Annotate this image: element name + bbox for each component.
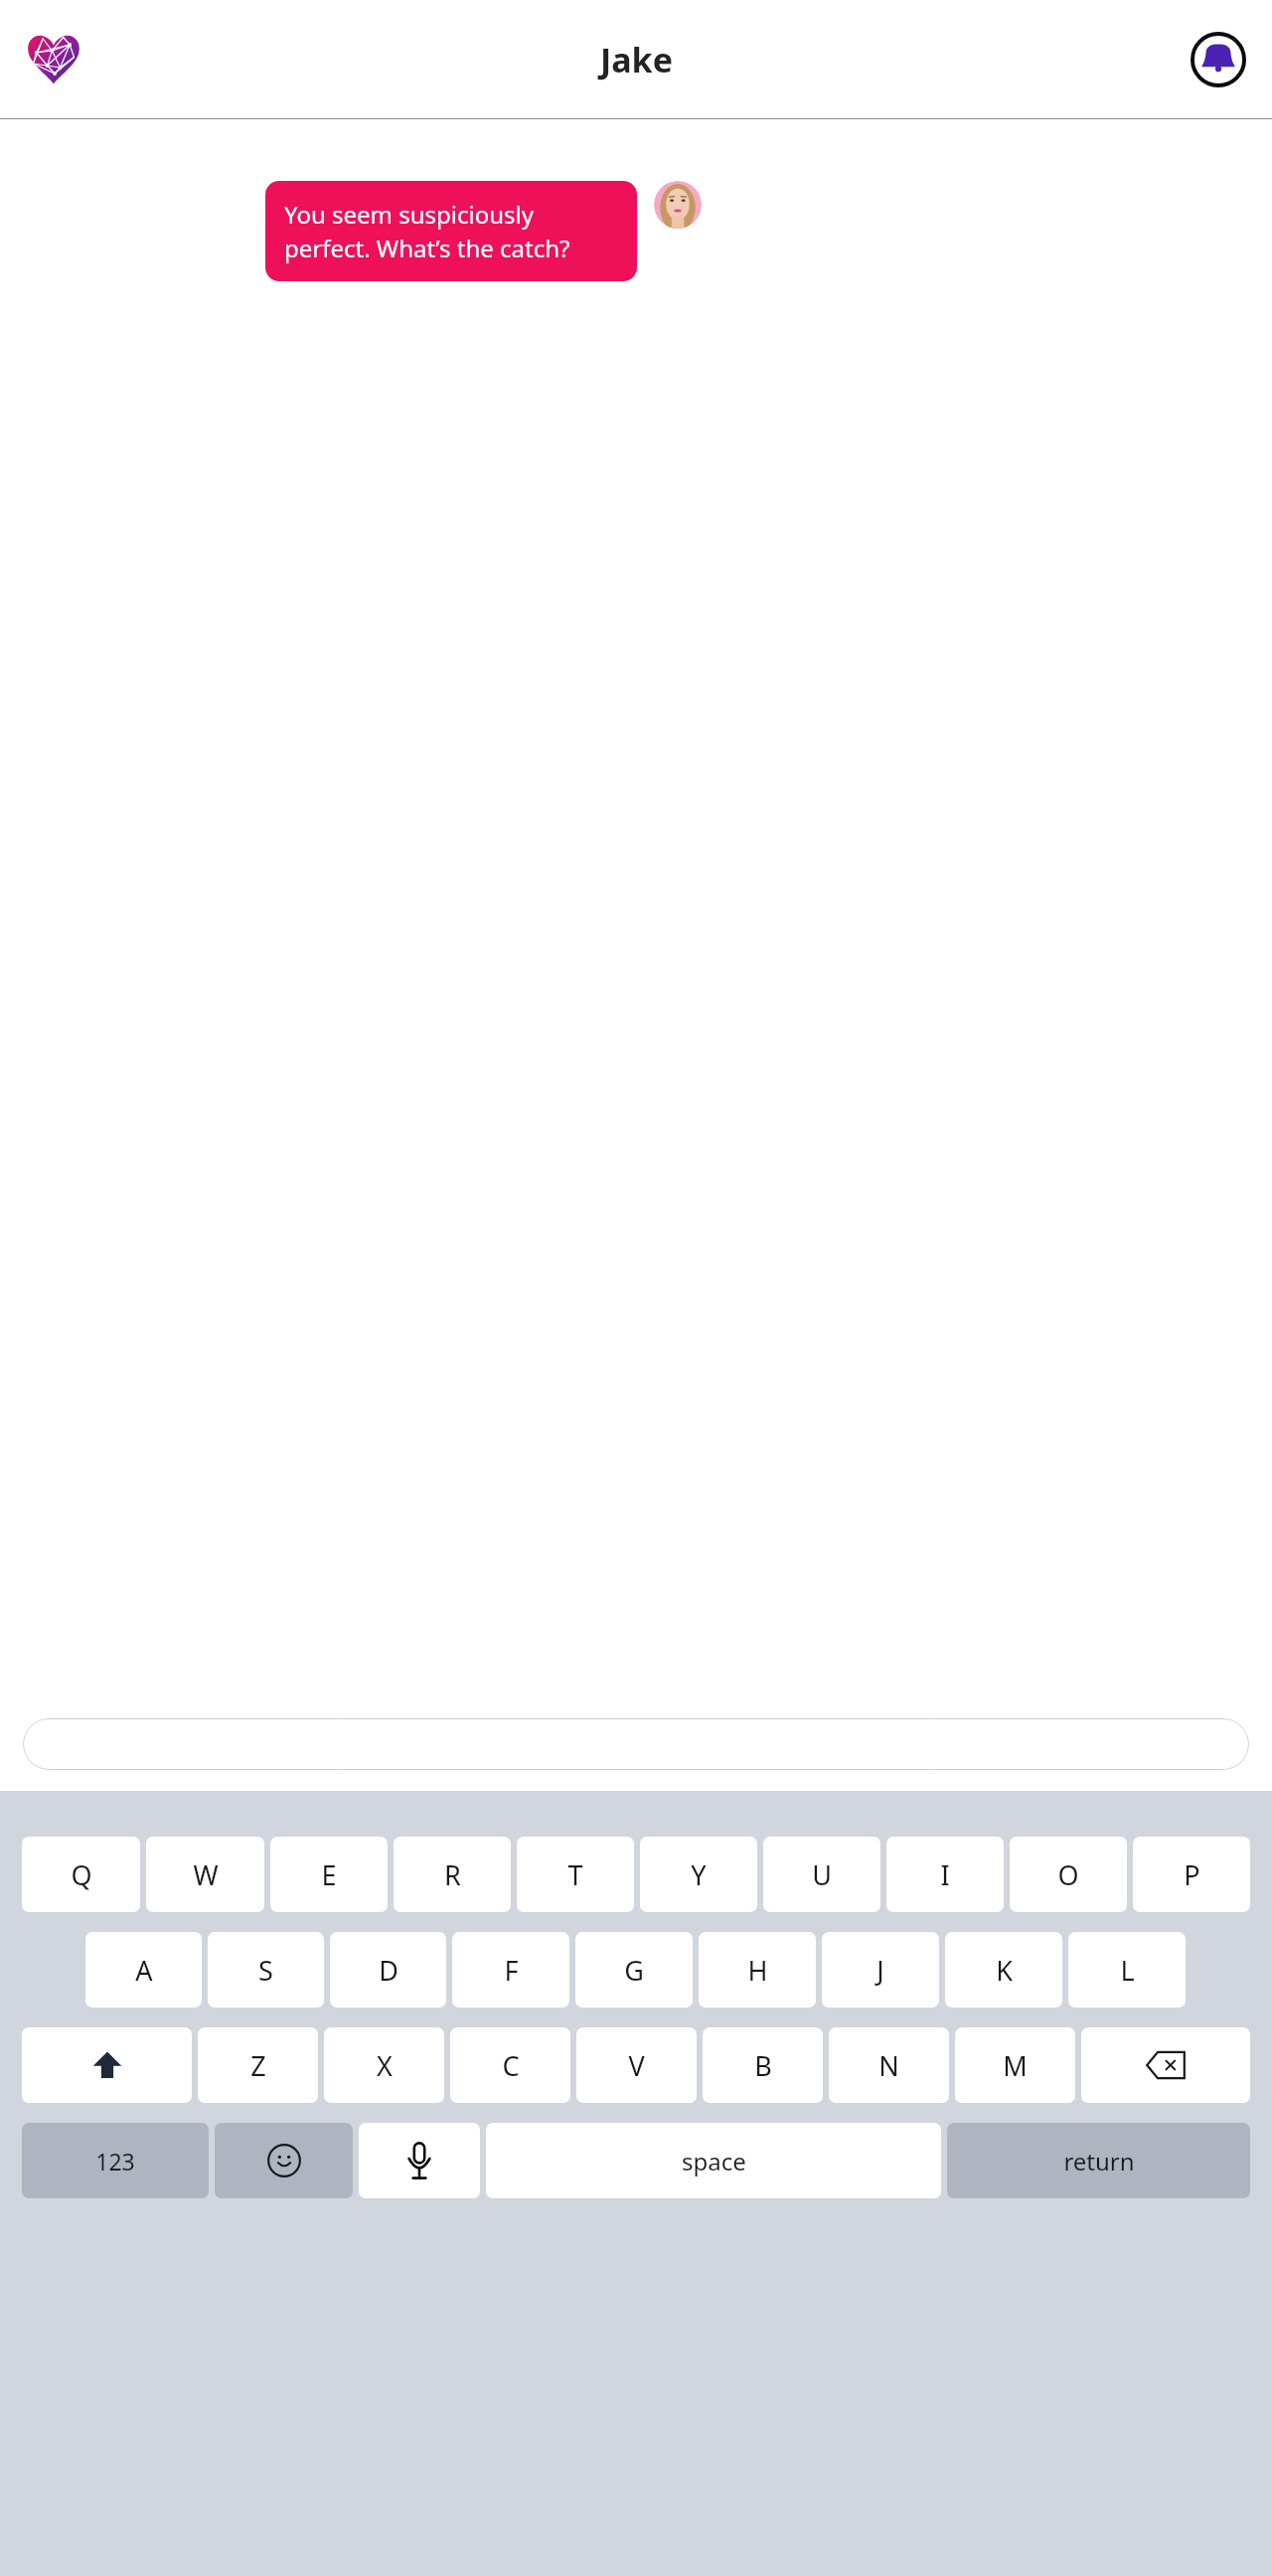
staticText: Y bbox=[691, 1856, 707, 1893]
button[interactable]: U bbox=[763, 1837, 880, 1912]
staticText: D bbox=[379, 1952, 398, 1989]
button[interactable]: 123 bbox=[22, 2123, 209, 2198]
button[interactable]: F bbox=[452, 1932, 569, 2008]
staticText: H bbox=[747, 1952, 768, 1989]
button[interactable]: P bbox=[1133, 1837, 1250, 1912]
button[interactable]: M bbox=[955, 2027, 1075, 2103]
button[interactable]: Y bbox=[640, 1837, 757, 1912]
button[interactable]: K bbox=[945, 1932, 1062, 2008]
button[interactable]: T bbox=[517, 1837, 634, 1912]
button[interactable]: Shift bbox=[22, 2027, 192, 2103]
button[interactable]: V bbox=[576, 2027, 697, 2103]
button[interactable]: You seem suspiciously perfect. What’s th… bbox=[265, 181, 637, 281]
staticText: S bbox=[258, 1952, 273, 1989]
button[interactable]: Notifications bbox=[1189, 30, 1248, 89]
staticText: R bbox=[444, 1856, 461, 1893]
staticText: Z bbox=[250, 2047, 266, 2084]
button[interactable]: N bbox=[829, 2027, 949, 2103]
staticText: N bbox=[878, 2047, 899, 2084]
staticText: Jake bbox=[600, 37, 673, 82]
button[interactable]: Voice input bbox=[359, 2123, 480, 2198]
button[interactable]: Profile photo bbox=[654, 181, 702, 229]
staticText: U bbox=[812, 1856, 832, 1893]
staticText: 123 bbox=[95, 2146, 135, 2176]
staticText: space bbox=[682, 2145, 746, 2177]
button[interactable]: C bbox=[450, 2027, 570, 2103]
staticText: B bbox=[754, 2047, 772, 2084]
staticText: I bbox=[940, 1856, 950, 1893]
button[interactable]: I bbox=[886, 1837, 1004, 1912]
button[interactable]: H bbox=[699, 1932, 816, 2008]
button[interactable]: Message input bbox=[23, 1718, 1249, 1770]
staticText: L bbox=[1120, 1952, 1135, 1989]
staticText: A bbox=[135, 1952, 153, 1989]
staticText: X bbox=[377, 2047, 393, 2084]
button[interactable]: E bbox=[270, 1837, 388, 1912]
staticText: J bbox=[876, 1952, 884, 1989]
button[interactable]: G bbox=[575, 1932, 693, 2008]
staticText: E bbox=[321, 1856, 337, 1893]
staticText: F bbox=[504, 1952, 519, 1989]
staticText: G bbox=[624, 1952, 644, 1989]
staticText: V bbox=[628, 2047, 645, 2084]
staticText: O bbox=[1057, 1856, 1079, 1893]
button[interactable]: J bbox=[822, 1932, 939, 2008]
button[interactable]: Home bbox=[24, 30, 83, 89]
button[interactable]: A bbox=[85, 1932, 202, 2008]
button[interactable]: D bbox=[330, 1932, 446, 2008]
button[interactable]: space bbox=[486, 2123, 941, 2198]
button[interactable]: X bbox=[324, 2027, 444, 2103]
button[interactable]: W bbox=[146, 1837, 264, 1912]
staticText: T bbox=[567, 1856, 583, 1893]
staticText: C bbox=[502, 2047, 520, 2084]
staticText: W bbox=[193, 1856, 219, 1893]
button[interactable]: S bbox=[208, 1932, 324, 2008]
button[interactable]: O bbox=[1010, 1837, 1127, 1912]
button[interactable]: Emoji bbox=[215, 2123, 353, 2198]
staticText: M bbox=[1003, 2047, 1028, 2084]
button[interactable]: L bbox=[1068, 1932, 1186, 2008]
button[interactable]: Q bbox=[22, 1837, 140, 1912]
staticText: K bbox=[996, 1952, 1013, 1989]
button[interactable]: B bbox=[703, 2027, 823, 2103]
staticText: You seem suspiciously perfect. What’s th… bbox=[284, 198, 618, 264]
button[interactable]: Backspace bbox=[1081, 2027, 1250, 2103]
button[interactable]: Z bbox=[198, 2027, 318, 2103]
button[interactable]: return bbox=[947, 2123, 1250, 2198]
staticText: return bbox=[1063, 2145, 1135, 2177]
staticText: Q bbox=[71, 1856, 92, 1893]
button[interactable]: R bbox=[394, 1837, 511, 1912]
staticText: P bbox=[1184, 1856, 1200, 1893]
